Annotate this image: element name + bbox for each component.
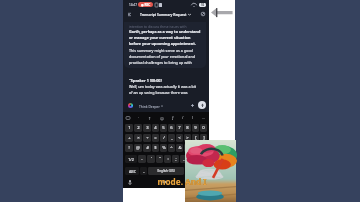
button[interactable]: ,: [180, 155, 187, 163]
button[interactable]: :: [164, 155, 171, 163]
button[interactable]: ": [156, 155, 163, 163]
staticText: ,: [183, 156, 185, 162]
staticText: 8: [186, 125, 189, 131]
staticText: 92: [201, 3, 205, 7]
button[interactable]: 6: [168, 124, 175, 132]
staticText: !: [128, 145, 130, 151]
staticText: mode. And I: [152, 176, 212, 187]
staticText: mode. And I: [152, 176, 212, 187]
button[interactable]: English (US): [148, 167, 184, 175]
button[interactable]: 4: [152, 124, 159, 132]
button[interactable]: *: [184, 144, 191, 152]
staticText: 14:47: [129, 3, 137, 7]
button[interactable]: Transcript Summary Request: [140, 12, 191, 16]
button[interactable]: ?: [188, 155, 195, 163]
button[interactable]: (: [192, 144, 199, 152]
button[interactable]: >: [184, 134, 191, 142]
button[interactable]: New chat: [199, 10, 207, 18]
staticText: [: [195, 135, 197, 141]
button[interactable]: ): [200, 144, 207, 152]
staticText: 5: [162, 125, 165, 131]
staticText: ↵: [198, 169, 202, 174]
staticText: intention to discuss these issues with: [129, 24, 187, 28]
button[interactable]: ]: [200, 134, 207, 142]
staticText: Well, um today was actually it was a bit…: [129, 84, 200, 95]
staticText: :: [167, 156, 169, 162]
staticText: (: [195, 145, 197, 151]
button[interactable]: @: [134, 144, 142, 152]
button[interactable]: 8: [184, 124, 191, 132]
staticText: $: [154, 145, 157, 151]
staticText: /: [182, 115, 184, 120]
button[interactable]: ×: [134, 134, 142, 142]
staticText: +: [128, 135, 131, 141]
staticText: ,: [143, 168, 145, 174]
staticText: ^: [170, 145, 173, 151]
staticText: 0: [202, 125, 205, 131]
button[interactable]: Menu: [125, 10, 133, 18]
button[interactable]: Think Deeper: [128, 103, 163, 108]
staticText: @: [136, 145, 140, 151]
button[interactable]: %: [160, 144, 167, 152]
button[interactable]: 5: [160, 124, 167, 132]
staticText: ABC: [129, 169, 136, 174]
button[interactable]: <: [176, 134, 183, 142]
button[interactable]: 3: [143, 124, 151, 132]
button[interactable]: #: [143, 144, 151, 152]
button[interactable]: ^: [168, 144, 175, 152]
staticText: ƒ: [172, 115, 174, 120]
button[interactable]: +: [125, 134, 133, 142]
staticText: 1: [128, 125, 131, 131]
button[interactable]: _: [168, 134, 175, 142]
staticText: #: [146, 145, 149, 151]
staticText: /: [163, 135, 165, 141]
button[interactable]: ,: [140, 167, 147, 175]
staticText: 4: [154, 125, 157, 131]
button[interactable]: -: [138, 155, 146, 163]
button[interactable]: .: [185, 167, 192, 175]
staticText: <: [178, 135, 181, 141]
staticText: ·: [138, 115, 140, 120]
button[interactable]: [: [192, 134, 199, 142]
staticText: ;: [175, 156, 177, 162]
button[interactable]: 1: [125, 124, 133, 132]
staticText: ÷: [146, 135, 149, 141]
button[interactable]: =: [152, 134, 159, 142]
button[interactable]: ;: [172, 155, 179, 163]
button[interactable]: 7: [176, 124, 183, 132]
button[interactable]: Send: [198, 101, 206, 109]
staticText: %: [162, 145, 166, 151]
button[interactable]: 2: [134, 124, 142, 132]
button[interactable]: /: [160, 134, 167, 142]
button[interactable]: !: [125, 144, 133, 152]
staticText: ☺: [160, 116, 164, 120]
staticText: ● REC: [141, 3, 151, 7]
staticText: *: [186, 145, 189, 151]
staticText: 2: [137, 125, 140, 131]
other: Arrow: [211, 7, 233, 18]
staticText: ": [159, 156, 161, 162]
staticText: 3: [146, 125, 149, 131]
staticText: ): [203, 145, 205, 151]
button[interactable]: 1/2: [125, 155, 137, 163]
button[interactable]: Backspace: [196, 155, 207, 163]
button[interactable]: Add attachment: [189, 102, 196, 109]
staticText: ×: [137, 135, 140, 141]
button[interactable]: ↵: [193, 167, 207, 175]
button[interactable]: $: [152, 144, 159, 152]
other: Voice input: [128, 180, 132, 185]
button[interactable]: 9: [192, 124, 199, 132]
button[interactable]: 0: [200, 124, 207, 132]
staticText: =: [154, 135, 157, 141]
staticText: 9: [194, 125, 197, 131]
staticText: ↑: [148, 116, 152, 120]
staticText: English (US): [157, 169, 175, 173]
button[interactable]: ÷: [143, 134, 151, 142]
button[interactable]: &: [176, 144, 183, 152]
staticText: -: [141, 156, 143, 162]
button[interactable]: ABC: [125, 167, 139, 175]
staticText: ': [151, 156, 152, 162]
button[interactable]: ': [147, 155, 155, 163]
